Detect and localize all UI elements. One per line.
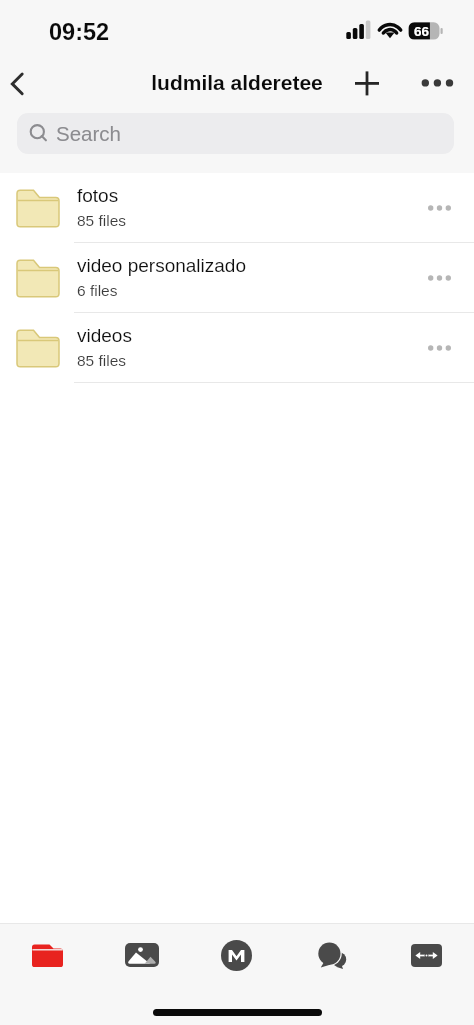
button[interactable]: video personalizado [0,243,474,313]
staticText: videos [77,325,132,346]
button[interactable]: More options for fotos [404,173,474,243]
button[interactable]: Back [0,60,38,108]
staticText: video personalizado [77,255,247,276]
staticText: 6 files [77,282,118,299]
button[interactable]: More options for videos [404,313,474,383]
staticText: 09:52 [49,19,110,45]
staticText: ludmila alderetee [0,71,474,94]
button[interactable]: videos [0,313,474,383]
button[interactable]: Transfers [379,924,474,986]
button[interactable]: Chat [284,924,379,986]
button[interactable]: Mega [189,924,284,986]
staticText: fotos [77,185,119,206]
staticText: Search [56,122,121,145]
button[interactable]: More options for video personalizado [404,243,474,313]
staticText: 66 [414,24,430,39]
button[interactable]: fotos [0,173,474,243]
staticText: 85 files [77,352,127,369]
button[interactable]: Gallery [94,924,189,986]
button[interactable]: Add [347,63,387,103]
button[interactable]: More options [414,63,460,103]
button[interactable]: Search [17,113,454,154]
button[interactable]: Files [0,924,94,986]
staticText: 85 files [77,212,127,229]
